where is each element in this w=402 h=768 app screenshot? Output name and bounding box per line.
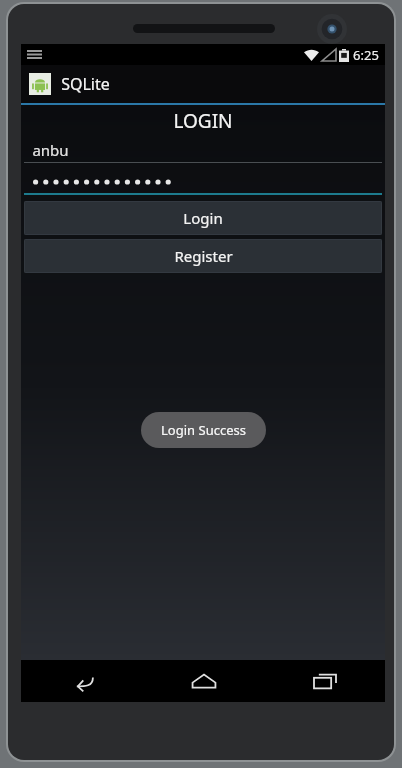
staticText: SQLite <box>61 73 110 95</box>
staticText: Register <box>174 246 233 266</box>
button[interactable]: Back <box>21 660 143 702</box>
button[interactable]: anbu <box>24 137 382 162</box>
staticText: 6:25 <box>353 46 379 64</box>
staticText: anbu <box>32 140 69 160</box>
button[interactable]: Register <box>24 239 382 273</box>
button[interactable]: Recent apps <box>264 660 385 702</box>
staticText: Login Success <box>161 421 246 439</box>
button[interactable]: Home <box>143 660 264 702</box>
button[interactable]: Login <box>24 201 382 235</box>
staticText: Login <box>183 208 223 228</box>
button[interactable]: Login Success <box>141 412 266 448</box>
button[interactable] <box>24 171 382 193</box>
staticText: LOGIN <box>173 108 233 134</box>
